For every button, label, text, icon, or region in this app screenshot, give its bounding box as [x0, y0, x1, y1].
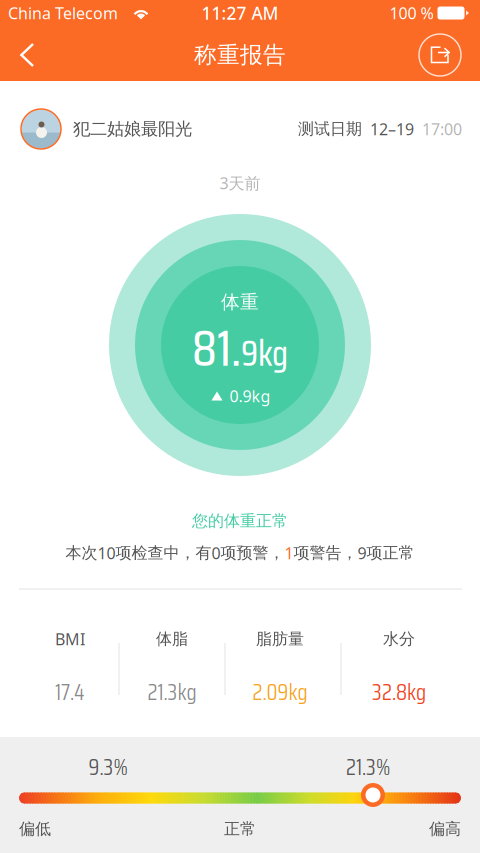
staticText: 10 — [97, 542, 115, 564]
staticText: 21.3kg — [147, 674, 196, 710]
button[interactable]: Share — [415, 30, 465, 80]
staticText: 偏低 — [19, 819, 51, 839]
staticText: 0.9kg — [229, 385, 270, 407]
staticText: 11:27 AM — [201, 1, 278, 24]
staticText: 本次 — [65, 543, 97, 563]
staticText: 9kg — [241, 325, 288, 381]
staticText: 测试日期 — [298, 119, 362, 139]
staticText: 正常 — [224, 819, 256, 839]
staticText: 2.09kg — [252, 674, 307, 710]
staticText: 100 % — [389, 2, 433, 24]
staticText: 9 — [357, 542, 366, 564]
staticText: 21.3% — [346, 749, 390, 785]
staticText: 12–19 — [370, 118, 414, 140]
staticText: 称重报告 — [194, 41, 286, 69]
staticText: China Telecom — [8, 2, 118, 24]
staticText: 17:00 — [422, 118, 462, 140]
staticText: 体脂 — [156, 629, 188, 649]
staticText: 17.4 — [55, 674, 85, 710]
staticText: 3天前 — [219, 172, 260, 194]
staticText: 1 — [284, 542, 293, 564]
staticText: 81. — [192, 308, 241, 388]
staticText: 您的体重正常 — [192, 511, 288, 531]
staticText: 体重 — [221, 290, 259, 313]
staticText: 偏高 — [429, 819, 461, 839]
staticText: 脂肪量 — [256, 629, 304, 649]
button[interactable]: Back — [1, 28, 53, 82]
staticText: 32.8kg — [372, 674, 426, 710]
staticText: 9.3% — [88, 749, 127, 785]
staticText: 项正常 — [366, 543, 414, 563]
staticText: BMI — [55, 628, 85, 650]
staticText: 水分 — [383, 629, 415, 649]
staticText: 0 — [211, 542, 220, 564]
staticText: 项检查中，有 — [115, 543, 211, 563]
staticText: 犯二姑娘最阳光 — [73, 118, 192, 140]
staticText: 项警告， — [293, 543, 357, 563]
staticText: 项预警， — [220, 543, 284, 563]
